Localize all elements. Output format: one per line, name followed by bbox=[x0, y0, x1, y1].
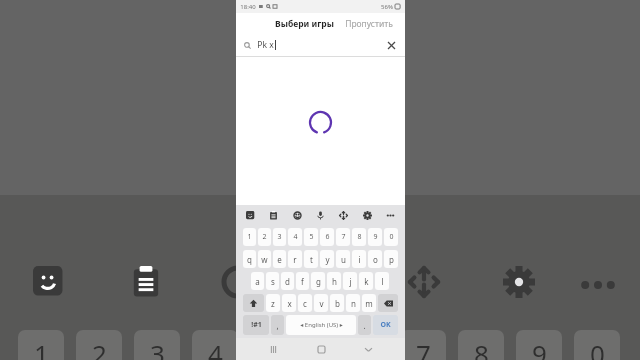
button[interactable]: 7 bbox=[336, 228, 350, 246]
button[interactable]: Clipboard bbox=[266, 208, 281, 223]
staticText: 3 bbox=[150, 336, 165, 360]
button[interactable]: k bbox=[359, 272, 373, 290]
button[interactable]: v bbox=[314, 294, 328, 312]
button[interactable]: . bbox=[358, 315, 371, 335]
button[interactable]: 2 bbox=[258, 228, 271, 246]
button[interactable]: h bbox=[327, 272, 341, 290]
button[interactable]: 4 bbox=[288, 228, 302, 246]
button[interactable]: Pk x bbox=[236, 34, 405, 56]
button[interactable]: Move keyboard bbox=[336, 208, 351, 223]
button[interactable]: e bbox=[273, 250, 286, 268]
button[interactable]: Shift bbox=[243, 294, 264, 312]
staticText: 8 bbox=[357, 232, 362, 242]
staticText: s bbox=[271, 276, 275, 287]
staticText: w bbox=[261, 254, 268, 265]
staticText: 6 bbox=[325, 232, 330, 242]
button[interactable]: 9 bbox=[368, 228, 382, 246]
button[interactable]: a bbox=[251, 272, 264, 290]
staticText: v bbox=[319, 298, 324, 309]
button[interactable]: ◂ English (US) ▸ bbox=[286, 315, 356, 335]
staticText: p bbox=[389, 254, 394, 265]
staticText: l bbox=[381, 276, 384, 287]
button[interactable]: i bbox=[352, 250, 366, 268]
button[interactable]: Voice input bbox=[313, 208, 328, 223]
button[interactable]: Stickers bbox=[243, 208, 258, 223]
button[interactable]: More options bbox=[383, 208, 398, 223]
button[interactable]: Clear search bbox=[386, 40, 397, 51]
staticText: c bbox=[303, 298, 307, 309]
button[interactable]: Hide keyboard bbox=[358, 339, 378, 359]
staticText: z bbox=[271, 298, 275, 309]
staticText: r bbox=[293, 254, 297, 265]
staticText: 56% bbox=[381, 3, 393, 11]
staticText: 3 bbox=[277, 232, 282, 242]
staticText: OK bbox=[380, 320, 391, 330]
button[interactable]: b bbox=[330, 294, 344, 312]
button[interactable]: 3 bbox=[273, 228, 286, 246]
button[interactable]: q bbox=[243, 250, 256, 268]
button[interactable]: w bbox=[258, 250, 271, 268]
staticText: 2 bbox=[262, 232, 267, 242]
staticText: Выбери игры bbox=[275, 18, 334, 30]
button[interactable]: f bbox=[296, 272, 309, 290]
staticText: 9 bbox=[532, 336, 547, 360]
staticText: n bbox=[351, 298, 356, 309]
button[interactable]: c bbox=[298, 294, 312, 312]
staticText: i bbox=[358, 254, 361, 265]
staticText: b bbox=[335, 298, 340, 309]
staticText: j bbox=[349, 276, 352, 287]
staticText: d bbox=[285, 276, 290, 287]
button[interactable]: !#1 bbox=[243, 315, 269, 335]
button[interactable]: , bbox=[271, 315, 284, 335]
button[interactable]: Выбери игры bbox=[273, 18, 336, 30]
button[interactable]: j bbox=[343, 272, 357, 290]
button[interactable]: u bbox=[336, 250, 350, 268]
staticText: Пропустить bbox=[345, 18, 393, 30]
staticText: , bbox=[276, 320, 279, 331]
button[interactable]: z bbox=[266, 294, 280, 312]
staticText: 5 bbox=[309, 232, 314, 242]
button[interactable]: d bbox=[281, 272, 294, 290]
button[interactable]: Emoji bbox=[290, 208, 305, 223]
button[interactable]: Keyboard settings bbox=[360, 208, 375, 223]
button[interactable]: 6 bbox=[320, 228, 334, 246]
button[interactable]: 1 bbox=[243, 228, 256, 246]
staticText: !#1 bbox=[251, 320, 262, 330]
button[interactable]: Backspace bbox=[378, 294, 398, 312]
staticText: 2 bbox=[92, 336, 107, 360]
button[interactable]: g bbox=[311, 272, 325, 290]
button[interactable]: x bbox=[282, 294, 296, 312]
staticText: 9 bbox=[373, 232, 378, 242]
button[interactable]: l bbox=[375, 272, 389, 290]
staticText: 4 bbox=[293, 232, 298, 242]
button[interactable]: y bbox=[320, 250, 334, 268]
button[interactable]: n bbox=[346, 294, 360, 312]
staticText: q bbox=[247, 254, 252, 265]
button[interactable]: Home bbox=[311, 339, 331, 359]
staticText: e bbox=[277, 254, 282, 265]
staticText: y bbox=[325, 254, 330, 265]
button[interactable]: Recents bbox=[263, 339, 283, 359]
button[interactable]: s bbox=[266, 272, 279, 290]
staticText: 0 bbox=[590, 336, 605, 360]
staticText: o bbox=[373, 254, 378, 265]
button[interactable]: OK bbox=[373, 315, 398, 335]
staticText: g bbox=[316, 276, 321, 287]
staticText: 7 bbox=[341, 232, 346, 242]
button[interactable]: t bbox=[304, 250, 318, 268]
staticText: m bbox=[365, 298, 373, 309]
button[interactable]: 0 bbox=[384, 228, 398, 246]
button[interactable]: r bbox=[288, 250, 302, 268]
button[interactable]: Пропустить bbox=[343, 18, 395, 30]
staticText: 1 bbox=[34, 336, 49, 360]
staticText: 18:40 bbox=[240, 3, 256, 11]
button[interactable]: p bbox=[384, 250, 398, 268]
button[interactable]: m bbox=[362, 294, 376, 312]
staticText: ◂ English (US) ▸ bbox=[300, 321, 343, 329]
staticText: k bbox=[364, 276, 369, 287]
button[interactable]: o bbox=[368, 250, 382, 268]
staticText: 0 bbox=[389, 232, 394, 242]
staticText: t bbox=[310, 254, 313, 265]
button[interactable]: 5 bbox=[304, 228, 318, 246]
button[interactable]: 8 bbox=[352, 228, 366, 246]
